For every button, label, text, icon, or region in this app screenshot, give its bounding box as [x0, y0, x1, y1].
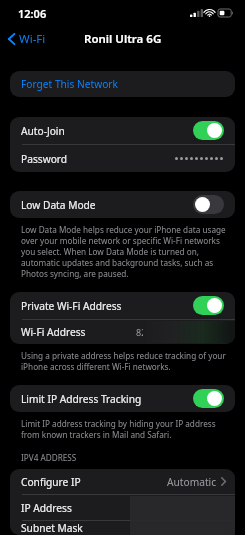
staticText: Wi-Fi Address [21, 325, 86, 339]
button[interactable]: IP Address [10, 495, 235, 520]
button[interactable]: Forget This Network [10, 71, 235, 97]
button[interactable]: Private Wi-Fi Address [193, 296, 224, 315]
staticText: IP Address [21, 501, 72, 515]
staticText: Limit IP Address Tracking [21, 392, 142, 406]
button[interactable]: Wi-Fi [0, 28, 52, 50]
staticText: 82 [136, 326, 147, 338]
staticText: Using a private address helps reduce tra… [21, 350, 227, 372]
button[interactable]: Limit IP Address Tracking [193, 389, 224, 408]
button[interactable]: Password [10, 145, 235, 172]
staticText: Low Data Mode helps reduce your iPhone d… [21, 224, 227, 279]
staticText: Ronil Ultra 6G [84, 31, 162, 47]
staticText: Password [21, 152, 68, 166]
button[interactable]: Auto-Join [193, 121, 224, 140]
staticText: Configure IP [21, 475, 81, 489]
button[interactable]: Limit IP Address Tracking [10, 385, 235, 412]
staticText: Low Data Mode [21, 198, 96, 212]
staticText: Wi-Fi [19, 31, 46, 47]
staticText: 12:06 [18, 6, 47, 21]
button[interactable]: Private Wi-Fi Address [10, 292, 235, 319]
button[interactable]: Wi-Fi Address [10, 320, 235, 344]
staticText: Limit IP address tracking by hiding your… [21, 418, 227, 440]
staticText: Private Wi-Fi Address [21, 299, 122, 313]
button[interactable]: Auto-Join [10, 117, 235, 144]
staticText: Forget This Network [21, 77, 118, 91]
button[interactable]: Configure IP [10, 469, 235, 494]
button[interactable]: Low Data Mode [193, 195, 224, 214]
button[interactable]: Low Data Mode [10, 191, 235, 218]
staticText: Automatic [167, 475, 217, 489]
staticText: IPV4 ADDRESS [21, 452, 77, 463]
staticText: Subnet Mask [21, 521, 83, 535]
button[interactable]: Subnet Mask [10, 521, 235, 535]
staticText: Auto-Join [21, 124, 65, 138]
